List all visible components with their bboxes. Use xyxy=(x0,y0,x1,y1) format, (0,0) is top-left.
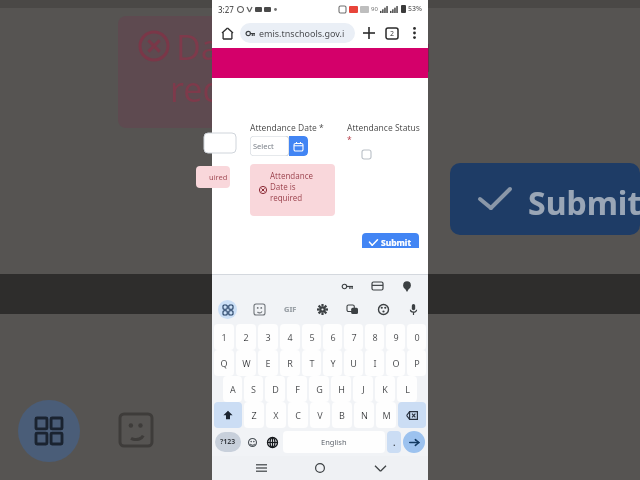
staticText: L xyxy=(405,383,410,395)
button[interactable]: Pick date xyxy=(289,136,308,156)
staticText: 4 xyxy=(287,331,293,343)
button[interactable]: 8 xyxy=(365,324,384,350)
staticText: Submit xyxy=(528,181,640,225)
button[interactable]: Home xyxy=(309,457,331,479)
staticText: Z xyxy=(251,409,257,421)
staticText: W xyxy=(242,357,251,369)
button[interactable]: Translate xyxy=(343,300,361,318)
button[interactable]: E xyxy=(258,350,278,376)
button[interactable]: Q xyxy=(214,350,234,376)
button[interactable]: Addresses xyxy=(398,277,416,295)
button[interactable]: 6 xyxy=(323,324,342,350)
staticText: M xyxy=(382,409,391,421)
button[interactable]: Submit xyxy=(362,233,419,252)
button[interactable]: Z xyxy=(244,402,264,428)
staticText: T xyxy=(309,357,315,369)
button[interactable]: C xyxy=(288,402,308,428)
staticText: B xyxy=(339,409,345,421)
staticText: Y xyxy=(330,357,336,369)
button[interactable]: Payment methods xyxy=(368,277,386,295)
button[interactable]: More options xyxy=(405,24,423,42)
staticText: G xyxy=(316,383,323,395)
button[interactable]: X xyxy=(266,402,286,428)
button[interactable]: New tab xyxy=(359,23,379,43)
staticText: 5 xyxy=(309,331,315,343)
staticText: H xyxy=(338,383,345,395)
button[interactable]: 1 xyxy=(214,324,234,350)
button[interactable]: L xyxy=(397,376,417,402)
button[interactable]: Y xyxy=(323,350,342,376)
button[interactable]: Tabs xyxy=(382,23,402,43)
button[interactable]: 9 xyxy=(386,324,405,350)
staticText: Date is xyxy=(270,181,296,192)
staticText: V xyxy=(317,409,323,421)
staticText: GIF xyxy=(284,304,297,314)
button[interactable]: 5 xyxy=(302,324,321,350)
button[interactable]: U xyxy=(344,350,363,376)
staticText: C xyxy=(295,409,301,421)
staticText: 3:27 xyxy=(218,4,234,15)
button[interactable]: O xyxy=(386,350,405,376)
staticText: Da xyxy=(176,24,220,70)
button[interactable]: J xyxy=(353,376,373,402)
staticText: 7 xyxy=(351,331,357,343)
button[interactable]: Period xyxy=(387,431,401,453)
staticText: J xyxy=(362,383,365,395)
button[interactable]: Emoji xyxy=(243,433,261,451)
button[interactable]: Enter xyxy=(403,431,425,453)
button[interactable]: P xyxy=(407,350,426,376)
button[interactable]: GIF xyxy=(280,299,300,319)
button[interactable]: M xyxy=(376,402,396,428)
staticText: N xyxy=(361,409,368,421)
button[interactable]: S xyxy=(244,376,263,402)
button[interactable]: Select Date xyxy=(250,136,308,156)
button[interactable]: Voice input xyxy=(404,300,422,318)
button[interactable]: G xyxy=(309,376,329,402)
button[interactable]: Home xyxy=(217,23,237,43)
button[interactable]: Settings xyxy=(313,300,331,318)
button[interactable]: R xyxy=(280,350,300,376)
staticText: I xyxy=(373,357,377,369)
button[interactable]: Change language xyxy=(263,433,281,451)
staticText: E xyxy=(265,357,271,369)
staticText: required xyxy=(270,192,303,203)
staticText: A xyxy=(230,383,236,395)
button[interactable]: Toolbar xyxy=(218,300,237,319)
button[interactable]: Hide keyboard xyxy=(369,457,391,479)
button[interactable]: D xyxy=(265,376,285,402)
staticText: U xyxy=(350,357,357,369)
button[interactable]: Backspace xyxy=(398,402,426,428)
staticText: 8 xyxy=(372,331,378,343)
button[interactable]: Themes xyxy=(374,300,392,318)
staticText: Attendance Status xyxy=(347,122,420,134)
button[interactable]: N xyxy=(354,402,374,428)
button[interactable]: W xyxy=(236,350,256,376)
button[interactable]: T xyxy=(302,350,321,376)
button[interactable]: I xyxy=(365,350,384,376)
button[interactable]: B xyxy=(332,402,352,428)
button[interactable]: emis.tnschools.gov.in xyxy=(240,23,355,43)
button[interactable]: A xyxy=(223,376,242,402)
staticText: Q xyxy=(220,357,228,369)
button[interactable]: 0 xyxy=(407,324,426,350)
button[interactable]: English xyxy=(283,431,385,453)
staticText: ?123 xyxy=(220,437,236,447)
staticText: . xyxy=(393,436,396,448)
button[interactable]: 4 xyxy=(280,324,300,350)
staticText: English xyxy=(321,437,347,447)
button[interactable]: V xyxy=(310,402,330,428)
button[interactable]: Recents xyxy=(250,457,272,479)
staticText: F xyxy=(295,383,300,395)
button[interactable]: Symbols xyxy=(215,432,241,452)
staticText: 90 xyxy=(371,5,378,13)
button[interactable]: H xyxy=(331,376,351,402)
button[interactable]: K xyxy=(375,376,395,402)
button[interactable]: Stickers xyxy=(250,300,268,318)
button[interactable]: F xyxy=(287,376,307,402)
button[interactable]: Shift xyxy=(214,402,242,428)
staticText: 2 xyxy=(390,29,395,39)
button[interactable]: Passwords xyxy=(338,277,356,295)
button[interactable]: 2 xyxy=(236,324,256,350)
button[interactable]: 3 xyxy=(258,324,278,350)
button[interactable]: 7 xyxy=(344,324,363,350)
